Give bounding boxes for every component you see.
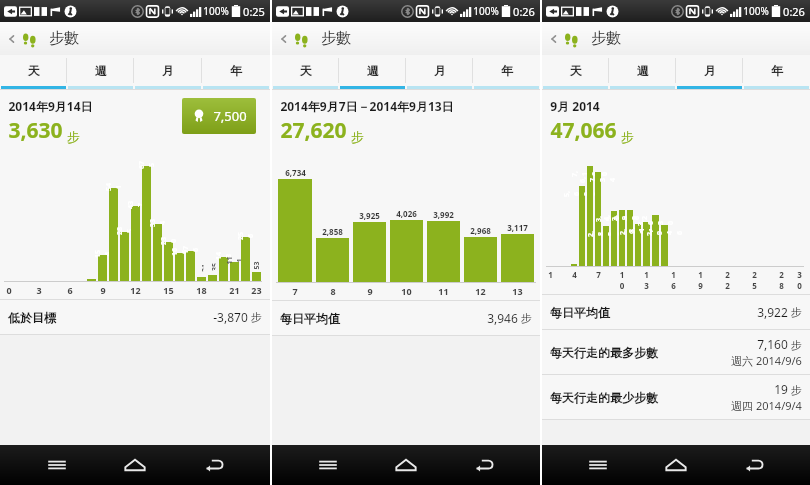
- staticText: 4,026: [602, 215, 642, 221]
- button[interactable]: 週: [609, 55, 676, 86]
- staticText: 47,066: [550, 116, 617, 145]
- staticText: 5,692: [562, 191, 602, 197]
- staticText: 步: [251, 310, 262, 324]
- staticText: 285: [114, 226, 134, 235]
- button[interactable]: Back: [546, 31, 562, 47]
- staticText: 3,925: [594, 216, 634, 222]
- button[interactable]: Menu: [35, 445, 79, 485]
- button[interactable]: Home: [654, 445, 698, 485]
- staticText: 100%: [203, 4, 229, 18]
- staticText: 步: [67, 129, 80, 145]
- staticText: 28: [777, 269, 786, 291]
- staticText: 176: [180, 245, 200, 254]
- button[interactable]: 月: [134, 55, 202, 86]
- button[interactable]: 週: [67, 55, 134, 86]
- button[interactable]: 每天行走的最少步數: [550, 375, 802, 419]
- staticText: 154: [92, 249, 112, 258]
- staticText: 10: [401, 285, 412, 297]
- staticText: 2,858: [586, 231, 626, 237]
- button[interactable]: 天: [0, 55, 67, 86]
- staticText: 3,922: [757, 304, 788, 320]
- staticText: 3,117: [626, 226, 666, 233]
- staticText: 675: [136, 160, 156, 169]
- staticText: 6,734: [285, 167, 306, 178]
- staticText: 166: [169, 247, 189, 256]
- staticText: 年: [501, 63, 513, 78]
- button[interactable]: Back: [192, 445, 236, 485]
- staticText: 27,620: [280, 116, 347, 145]
- staticText: 2014年9月7日－2014年9月13日: [280, 98, 454, 114]
- staticText: 2014年9月14日: [8, 98, 93, 114]
- staticText: 3,117: [507, 222, 528, 233]
- button[interactable]: Back: [276, 31, 292, 47]
- staticText: 30: [795, 269, 804, 291]
- button[interactable]: Menu: [576, 445, 620, 485]
- button[interactable]: 週: [339, 55, 406, 86]
- staticText: 16: [669, 269, 678, 291]
- button[interactable]: Back: [0, 22, 270, 55]
- button[interactable]: 月: [406, 55, 473, 86]
- button[interactable]: Menu: [306, 445, 350, 485]
- staticText: 3,992: [433, 209, 454, 220]
- button[interactable]: 年: [473, 55, 540, 86]
- staticText: 9月 2014: [550, 98, 600, 114]
- button[interactable]: 月: [676, 55, 743, 86]
- staticText: 53: [252, 261, 261, 270]
- staticText: 13: [642, 269, 651, 291]
- staticText: 週六 2014/9/6: [731, 353, 802, 368]
- staticText: 2,858: [322, 226, 343, 237]
- staticText: 4,026: [396, 208, 417, 219]
- button[interactable]: 每日平均值: [280, 301, 532, 335]
- staticText: 2,968: [618, 229, 658, 235]
- staticText: 步: [791, 383, 802, 397]
- staticText: 541: [103, 182, 123, 191]
- button[interactable]: 年: [202, 55, 270, 86]
- staticText: 437: [125, 200, 145, 209]
- staticText: 19: [774, 381, 788, 397]
- staticText: 111: [225, 256, 244, 265]
- button[interactable]: Back: [4, 31, 20, 47]
- staticText: 6,734: [578, 177, 618, 183]
- staticText: 19: [696, 269, 705, 291]
- staticText: 21: [199, 263, 203, 272]
- staticText: 天: [300, 63, 312, 78]
- staticText: 月: [704, 63, 716, 78]
- button[interactable]: Back: [542, 22, 810, 55]
- staticText: 334: [147, 218, 167, 227]
- staticText: 13: [512, 285, 523, 297]
- button[interactable]: Home: [384, 445, 428, 485]
- button[interactable]: 每日平均值: [550, 295, 802, 329]
- button[interactable]: 天: [272, 55, 339, 86]
- staticText: 6: [67, 284, 73, 296]
- staticText: 7,160: [757, 336, 788, 352]
- staticText: 25: [750, 269, 759, 291]
- button[interactable]: 低於目標: [8, 300, 262, 334]
- button[interactable]: Back: [272, 22, 540, 55]
- staticText: 步數: [591, 29, 621, 48]
- button[interactable]: 7,500: [182, 98, 256, 134]
- staticText: 3,946: [487, 310, 518, 326]
- button[interactable]: 天: [542, 55, 609, 86]
- staticText: 3: [36, 284, 42, 296]
- button[interactable]: Home: [113, 445, 157, 485]
- staticText: 23: [251, 284, 262, 296]
- staticText: 230: [158, 236, 178, 245]
- button[interactable]: 年: [743, 55, 810, 86]
- staticText: 週: [95, 63, 107, 78]
- staticText: 0:25: [243, 4, 265, 19]
- staticText: 3,992: [610, 215, 650, 221]
- staticText: 月: [162, 63, 174, 78]
- staticText: 步: [521, 311, 532, 325]
- staticText: 18: [196, 284, 207, 296]
- staticText: 9: [367, 285, 373, 297]
- staticText: 143: [213, 251, 233, 260]
- button[interactable]: 每天行走的最多步數: [550, 330, 802, 374]
- button[interactable]: Back: [462, 445, 506, 485]
- staticText: 每天行走的最少步數: [550, 390, 658, 405]
- staticText: 年: [771, 63, 783, 78]
- staticText: 週四 2014/9/4: [731, 398, 802, 413]
- staticText: 每日平均值: [280, 311, 340, 326]
- staticText: 每日平均值: [550, 305, 610, 320]
- button[interactable]: Back: [732, 445, 776, 485]
